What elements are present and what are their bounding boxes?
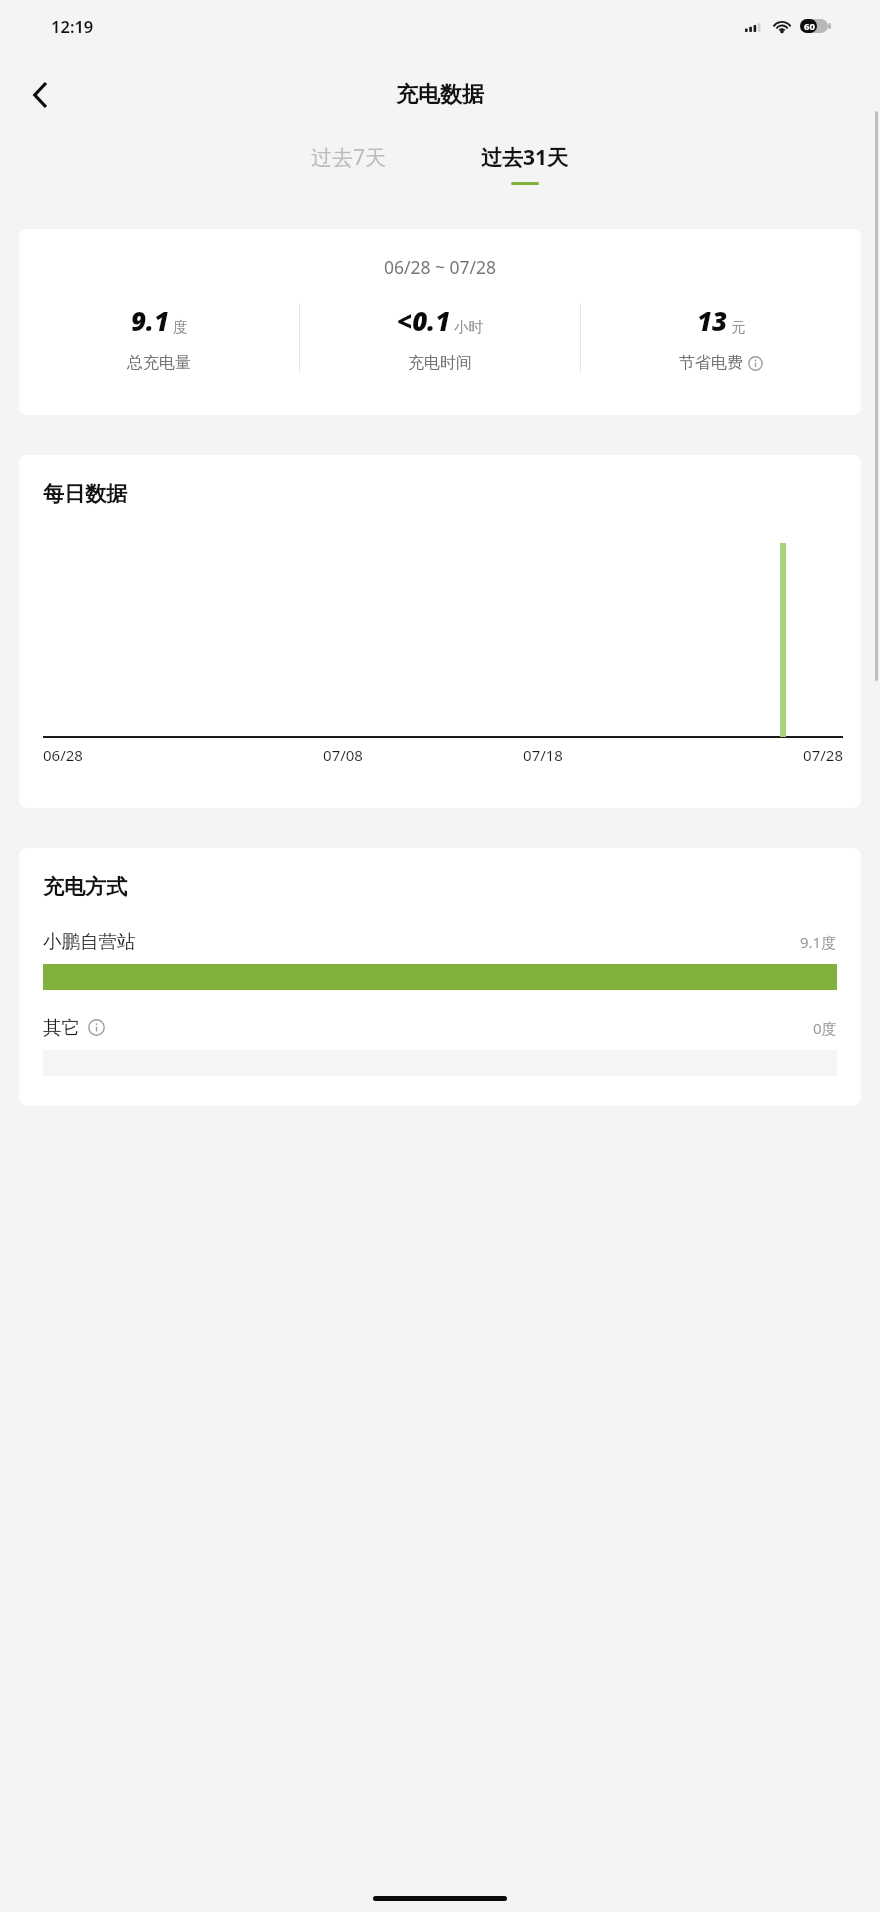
staticText: 过去7天 <box>311 143 387 172</box>
staticText: 元 <box>731 318 746 336</box>
staticText: 总充电量 <box>127 353 191 373</box>
staticText: 9.1度 <box>800 932 837 952</box>
staticText: 07/28 <box>643 745 843 765</box>
staticText: 小鹏自营站 <box>43 930 136 953</box>
staticText: 06/28 <box>43 745 243 765</box>
staticText: 过去31天 <box>481 143 569 172</box>
staticText: 其它 <box>43 1016 80 1039</box>
button[interactable]: 06/28 ~ 07/28 <box>19 229 861 415</box>
staticText: 60 <box>804 20 815 33</box>
staticText: <0.1 <box>397 303 451 338</box>
other: Info <box>748 356 763 371</box>
staticText: 06/28 ~ 07/28 <box>19 255 861 279</box>
staticText: 0度 <box>813 1018 837 1038</box>
staticText: 9.1 <box>131 303 170 338</box>
staticText: 充电数据 <box>396 81 484 109</box>
staticText: 07/18 <box>443 745 643 765</box>
button[interactable]: 过去7天 <box>303 137 395 191</box>
staticText: 节省电费 <box>679 353 743 373</box>
button[interactable]: 充电方式 <box>19 848 861 1106</box>
staticText: 12:19 <box>51 15 94 37</box>
staticText: 充电时间 <box>408 353 472 373</box>
button[interactable]: Back <box>16 71 64 119</box>
staticText: 每日数据 <box>43 481 127 507</box>
staticText: 充电方式 <box>43 874 127 900</box>
button[interactable]: 过去31天 <box>473 137 577 191</box>
staticText: 小时 <box>454 318 483 336</box>
staticText: 度 <box>173 318 188 336</box>
other: Info <box>88 1019 105 1036</box>
button[interactable]: 每日数据 <box>19 455 861 808</box>
staticText: 13 <box>697 303 728 338</box>
staticText: 07/08 <box>243 745 443 765</box>
